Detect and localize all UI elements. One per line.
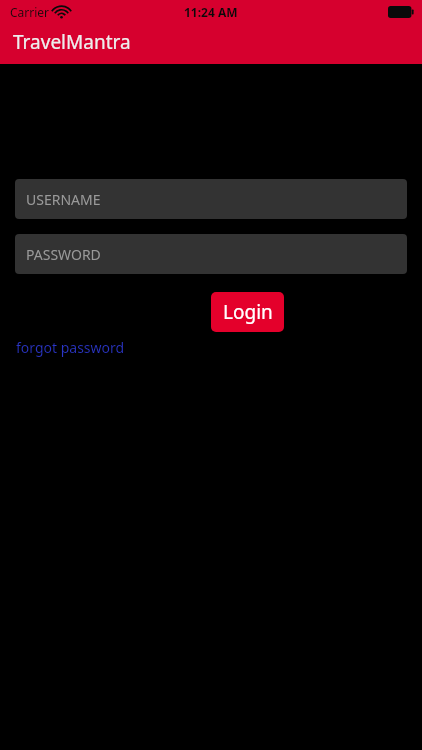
staticText: Login [223,299,273,325]
staticText: Carrier [10,4,50,20]
staticText: forgot password [16,338,125,357]
staticText: PASSWORD [26,245,101,264]
staticText: 11:24 AM [184,4,238,20]
staticText: TravelMantra [13,29,131,55]
staticText: USERNAME [26,190,101,209]
button[interactable]: forgot password [15,336,126,359]
button[interactable]: Login [211,292,284,332]
button[interactable]: PASSWORD [15,234,407,274]
button[interactable]: USERNAME [15,179,407,219]
